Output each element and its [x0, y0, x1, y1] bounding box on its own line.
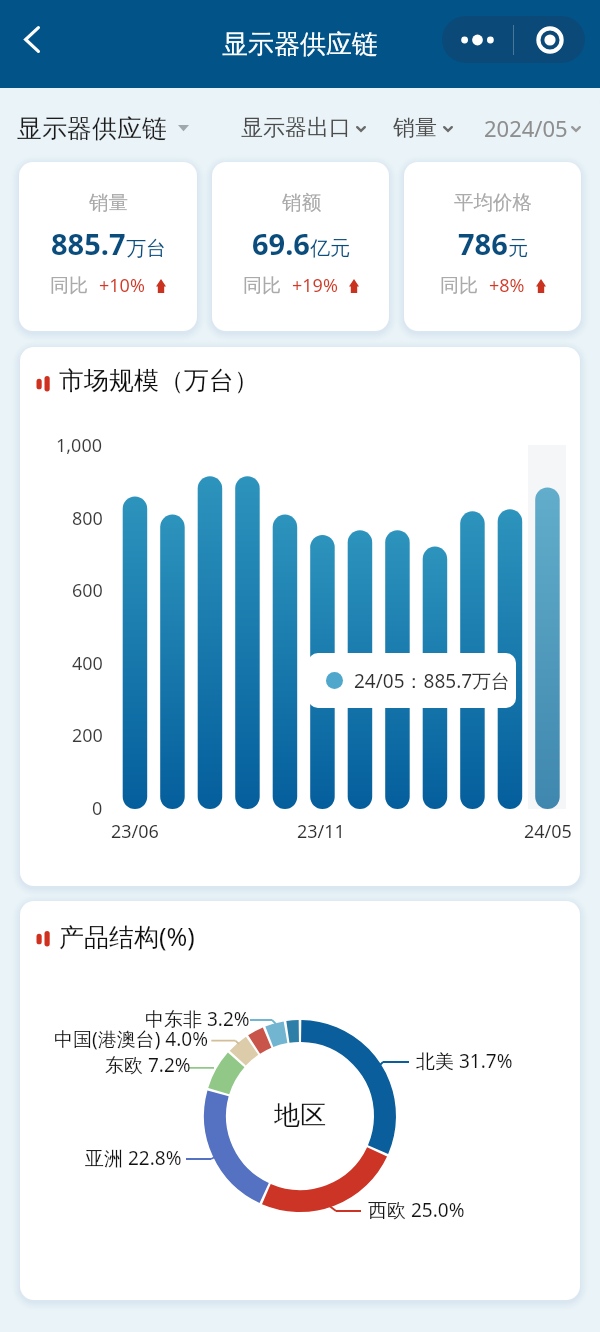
staticText: 885.7 — [51, 224, 126, 263]
staticText: 24/05：885.7万台 — [354, 668, 511, 694]
staticText: 显示器供应链 — [17, 113, 167, 144]
button[interactable] — [476, 95, 591, 155]
staticText: 中国(港澳台) 4.0% — [54, 1026, 208, 1052]
staticText: 同比 — [440, 274, 478, 298]
button[interactable] — [233, 95, 376, 155]
staticText: 西欧 25.0% — [368, 1197, 465, 1223]
staticText: +8% — [489, 273, 525, 298]
staticText: 同比 — [50, 274, 88, 298]
staticText: 800 — [72, 506, 103, 531]
button[interactable]: Back — [6, 13, 58, 65]
button[interactable]: 平均价格 — [404, 162, 581, 331]
staticText: 显示器供应链 — [222, 28, 378, 61]
staticText: 万台 — [126, 236, 166, 261]
staticText: 亚洲 22.8% — [85, 1145, 182, 1171]
staticText: 销额 — [282, 190, 321, 215]
staticText: 东欧 7.2% — [105, 1052, 191, 1078]
staticText: 北美 31.7% — [416, 1048, 513, 1074]
staticText: 销量 — [393, 114, 437, 142]
staticText: 1,000 — [56, 433, 103, 458]
staticText: 产品结构(%) — [59, 919, 195, 953]
button[interactable] — [2, 95, 197, 155]
staticText: 23/06 — [111, 819, 159, 844]
staticText: 同比 — [243, 274, 281, 298]
staticText: +19% — [292, 273, 338, 298]
staticText: 23/11 — [297, 819, 345, 844]
staticText: 200 — [72, 723, 103, 748]
staticText: 600 — [72, 578, 103, 603]
staticText: 元 — [508, 236, 528, 261]
staticText: 显示器出口 — [241, 114, 351, 142]
staticText: 中东非 3.2% — [145, 1006, 250, 1032]
staticText: 786 — [458, 224, 508, 263]
staticText: 地区 — [274, 1099, 326, 1132]
staticText: 2024/05 — [484, 113, 568, 143]
staticText: 亿元 — [310, 236, 350, 261]
staticText: 24/05 — [524, 819, 572, 844]
staticText: 0 — [92, 796, 103, 821]
staticText: +10% — [99, 273, 145, 298]
staticText: 平均价格 — [454, 190, 532, 215]
staticText: 400 — [72, 651, 103, 676]
staticText: 69.6 — [252, 224, 310, 263]
staticText: 市场规模（万台） — [59, 365, 259, 396]
button[interactable] — [385, 95, 463, 155]
button[interactable]: 销额 — [212, 162, 389, 331]
button[interactable]: Mini program menu — [442, 16, 585, 63]
button[interactable]: 销量 — [19, 162, 197, 331]
staticText: 销量 — [89, 190, 128, 215]
